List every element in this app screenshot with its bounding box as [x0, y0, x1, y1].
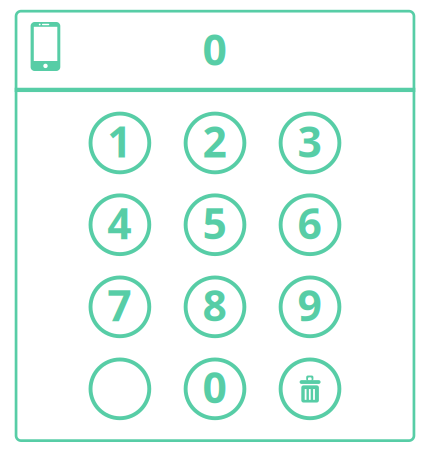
button[interactable]: 6 [279, 193, 341, 256]
button[interactable]: 2 [184, 112, 246, 174]
button[interactable]: 8 [184, 275, 246, 338]
staticText: 1 [107, 112, 131, 169]
staticText: 5 [202, 194, 226, 251]
button[interactable]: 9 [279, 275, 341, 338]
button[interactable]: Device [31, 22, 60, 71]
staticText: 3 [297, 112, 321, 169]
button[interactable]: 4 [89, 193, 151, 256]
button[interactable]: 7 [89, 275, 151, 338]
button[interactable]: 0 [184, 357, 246, 420]
staticText: 4 [107, 194, 131, 251]
staticText: 2 [202, 112, 226, 169]
staticText: 0 [202, 358, 226, 415]
staticText: 6 [297, 194, 321, 251]
button[interactable]: 5 [184, 193, 246, 256]
button[interactable]: 3 [279, 112, 341, 174]
staticText: 9 [297, 276, 321, 333]
button[interactable]: Delete [279, 357, 341, 420]
staticText: 0 [202, 21, 226, 77]
button[interactable]: 1 [89, 112, 151, 174]
staticText: 8 [202, 276, 226, 333]
staticText: 7 [107, 276, 131, 333]
